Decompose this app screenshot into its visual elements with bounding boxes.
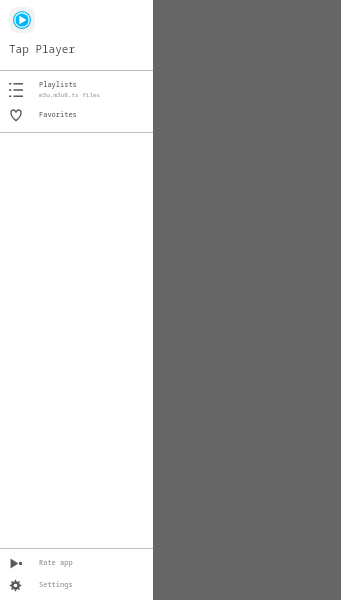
staticText: Settings [39, 580, 73, 590]
button[interactable]: Playlists [0, 77, 153, 102]
staticText: Tap Player [9, 41, 75, 56]
other: Playlists [9, 83, 23, 97]
staticText: Rate app [39, 558, 73, 568]
button[interactable]: Rate app [0, 552, 153, 574]
staticText: No channels yet [126, 316, 216, 330]
staticText: m3u,m3u8,ts files [39, 91, 101, 99]
staticText: Playlists [39, 80, 77, 90]
button[interactable] [0, 0, 341, 600]
button[interactable]: Settings [0, 574, 153, 596]
button[interactable]: Favorites [0, 102, 153, 127]
other: Rate app [9, 557, 22, 570]
other: Favorites [9, 108, 23, 122]
other: Settings [9, 579, 22, 592]
staticText: Favorites [39, 110, 77, 120]
